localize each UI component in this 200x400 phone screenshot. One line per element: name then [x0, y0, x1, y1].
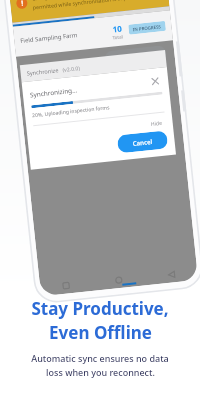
staticText: Changes to inspections and/or forms are …	[31, 0, 141, 2]
button[interactable]: Recents	[39, 275, 93, 296]
staticText: Cancel	[132, 137, 153, 147]
button[interactable]: Hide	[147, 117, 166, 128]
staticText: 10	[112, 22, 123, 34]
staticText: Hide	[150, 119, 163, 127]
staticText: Field Sampling Farm	[20, 31, 78, 45]
button[interactable]: Home	[91, 269, 145, 291]
button[interactable]: Back	[144, 264, 198, 285]
button[interactable]: Field Sampling Farm	[13, 10, 173, 57]
staticText: (v2.0.0)	[62, 64, 81, 73]
staticText: Mark Complete	[117, 51, 155, 62]
staticText: Automatic sync ensures no data	[31, 352, 169, 364]
staticText: loss when you reconnect.	[46, 366, 155, 378]
button[interactable]: IN PROGRESS	[128, 21, 166, 35]
staticText: !	[21, 0, 24, 9]
button[interactable]: Cancel	[117, 130, 168, 153]
staticText: Synchronize	[26, 66, 59, 78]
button[interactable]: Close	[149, 75, 162, 88]
button[interactable]: Mark Complete	[104, 45, 167, 68]
staticText: Total	[112, 33, 124, 40]
staticText: Even Offline	[49, 321, 152, 344]
staticText: 20%, Uploading inspection forms	[32, 104, 110, 119]
staticText: permitted while synchronisation is in pr…	[32, 0, 143, 11]
staticText: IN PROGRESS	[132, 23, 162, 32]
staticText: Stay Productive,	[31, 297, 169, 320]
staticText: Synchronizing...	[29, 85, 78, 99]
